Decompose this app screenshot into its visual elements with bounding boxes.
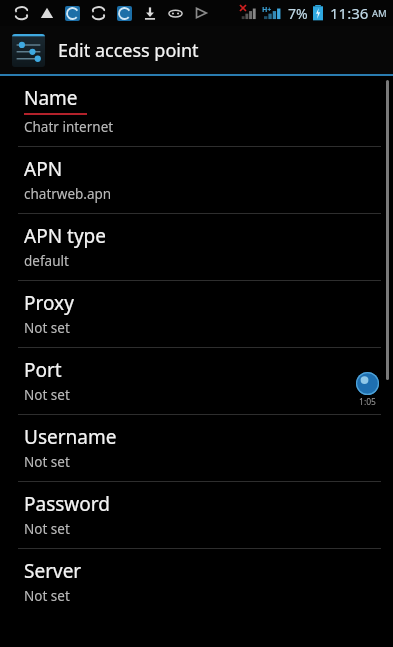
button[interactable]: APN type bbox=[0, 214, 393, 280]
staticText: Password bbox=[24, 491, 110, 517]
staticText: H+ bbox=[262, 5, 272, 15]
staticText: 1:05 bbox=[359, 396, 376, 408]
button[interactable]: Username bbox=[0, 415, 393, 481]
button[interactable]: Port bbox=[0, 348, 393, 414]
staticText: default bbox=[24, 252, 69, 270]
staticText: Chatr internet bbox=[24, 118, 114, 136]
staticText: Not set bbox=[24, 587, 70, 605]
staticText: Name bbox=[24, 85, 78, 111]
staticText: APN type bbox=[24, 223, 106, 249]
staticText: Server bbox=[24, 558, 82, 584]
staticText: Not set bbox=[24, 453, 70, 471]
button[interactable]: Access point settings bbox=[0, 26, 393, 74]
staticText: 7% bbox=[288, 4, 308, 23]
staticText: Port bbox=[24, 357, 62, 383]
staticText: 11:36 bbox=[330, 3, 369, 23]
staticText: Proxy bbox=[24, 290, 74, 316]
button[interactable]: Proxy bbox=[0, 281, 393, 347]
other: Recording timer bbox=[356, 372, 379, 395]
staticText: APN bbox=[24, 156, 63, 182]
staticText: chatrweb.apn bbox=[24, 185, 112, 203]
staticText: Username bbox=[24, 424, 117, 450]
button[interactable]: Server bbox=[0, 549, 393, 615]
staticText: Not set bbox=[24, 386, 70, 404]
other: Access point settings bbox=[12, 34, 45, 67]
staticText: Not set bbox=[24, 520, 70, 538]
button[interactable]: APN bbox=[0, 147, 393, 213]
staticText: Edit access point bbox=[58, 38, 199, 63]
staticText: Not set bbox=[24, 319, 70, 337]
staticText: AM bbox=[372, 7, 387, 20]
button[interactable]: Password bbox=[0, 482, 393, 548]
button[interactable]: Name bbox=[0, 76, 393, 146]
